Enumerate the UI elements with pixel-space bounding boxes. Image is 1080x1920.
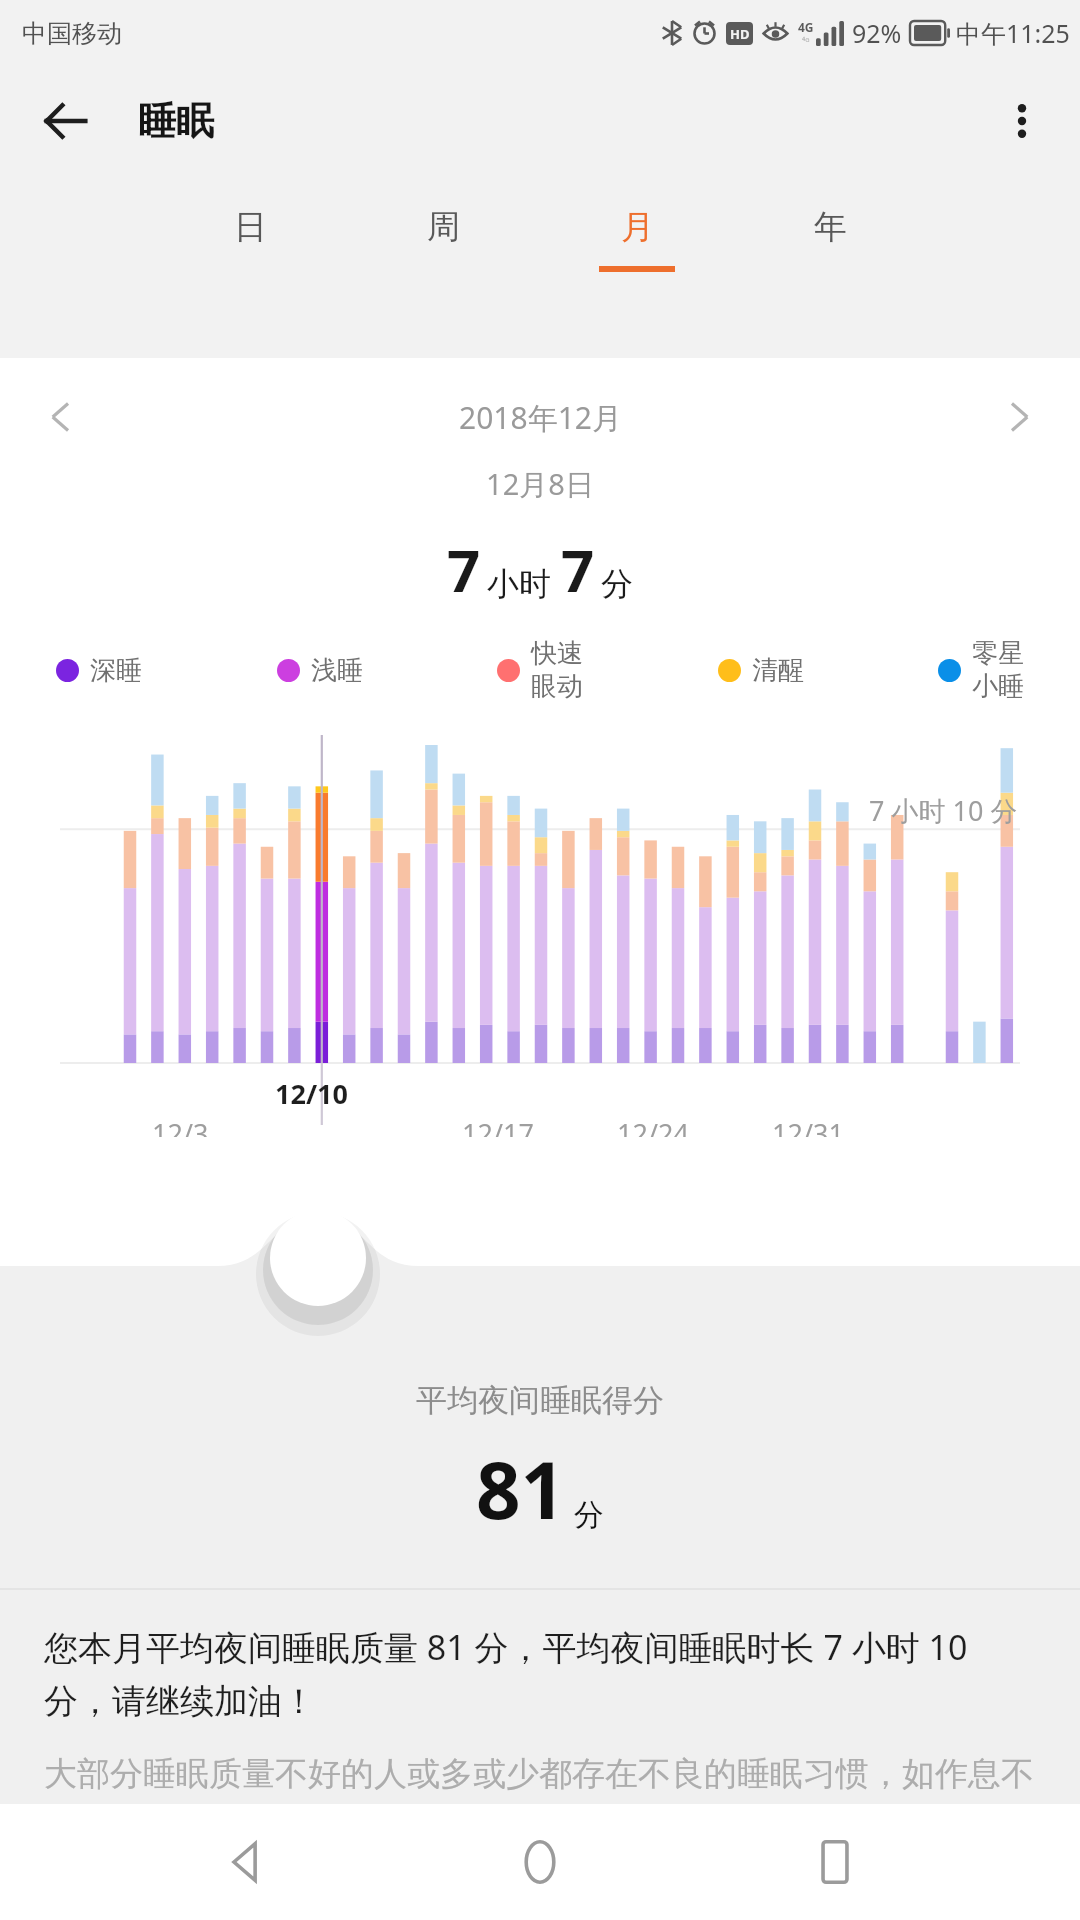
button[interactable]: 更多选项	[986, 85, 1058, 157]
staticText: ⁴ᴳ	[802, 35, 810, 47]
staticText: 81	[476, 1436, 566, 1542]
staticText: 中国移动	[22, 18, 122, 49]
staticText: 平均夜间睡眠得分	[416, 1381, 664, 1420]
staticText: 浅睡	[311, 654, 363, 687]
staticText: 清醒	[752, 654, 804, 687]
button[interactable]: 年	[785, 206, 875, 266]
staticText: 周	[427, 206, 460, 248]
staticText: 大部分睡眠质量不好的人或多或少都存在不良的睡眠习惯，如作息不规律、缺乏充足的阳光…	[44, 1753, 1036, 1804]
staticText: 快速	[531, 637, 583, 670]
button[interactable]: 月	[592, 206, 682, 272]
button[interactable]: 最近任务	[785, 1812, 885, 1912]
staticText: 12/10	[275, 1075, 348, 1112]
staticText: 您本月平均夜间睡眠质量 81 分，平均夜间睡眠时长 7 小时 10 分，请继续加…	[44, 1624, 1036, 1723]
button[interactable]: 下个月	[986, 384, 1052, 450]
staticText: 小睡	[972, 670, 1024, 703]
staticText: 中午11:25	[956, 16, 1070, 50]
staticText: 零星	[972, 637, 1024, 670]
staticText: 12/31	[772, 1115, 844, 1137]
staticText: 小时	[487, 564, 551, 604]
button[interactable]: 上个月	[28, 384, 94, 450]
staticText: 眼动	[531, 670, 583, 703]
staticText: 分	[574, 1496, 604, 1534]
staticText: 日	[234, 206, 267, 248]
staticText: 92%	[852, 16, 902, 50]
staticText: 12月8日	[0, 464, 1080, 504]
button[interactable]: 返回	[30, 85, 102, 157]
staticText: HD	[730, 25, 750, 43]
staticText: 7	[561, 530, 595, 609]
staticText: 深睡	[90, 654, 142, 687]
staticText: 12/3	[152, 1115, 209, 1137]
staticText: 月	[621, 206, 654, 248]
button[interactable]: 日	[205, 206, 295, 266]
staticText: 7	[447, 530, 481, 609]
staticText: 7 小时 10 分	[869, 792, 1018, 829]
staticText: 2018年12月	[459, 397, 622, 438]
staticText: 年	[814, 206, 847, 248]
staticText: 分	[601, 564, 633, 604]
staticText: 睡眠	[138, 97, 214, 145]
staticText: 4G	[798, 19, 814, 35]
staticText: 12/24	[617, 1115, 689, 1137]
button[interactable]: 主屏幕	[490, 1812, 590, 1912]
button[interactable]: 返回	[195, 1812, 295, 1912]
staticText: 12/17	[462, 1115, 534, 1137]
button[interactable]: 周	[398, 206, 488, 266]
